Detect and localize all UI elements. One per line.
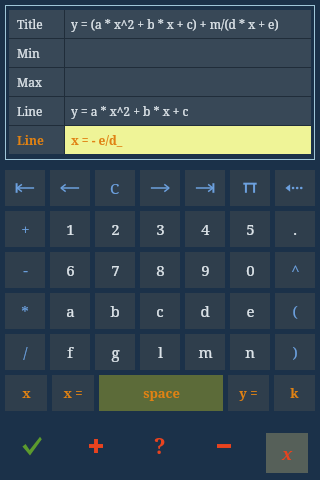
staticText: 7: [111, 260, 120, 280]
button[interactable]: Cancel: [266, 433, 308, 473]
staticText: +: [21, 219, 30, 239]
button[interactable]: 9: [185, 252, 225, 288]
button[interactable]: Add: [64, 412, 128, 480]
button[interactable]: 2: [95, 211, 135, 247]
button[interactable]: C: [95, 170, 135, 206]
staticText: 8: [156, 260, 165, 280]
button[interactable]: 4: [185, 211, 225, 247]
button[interactable]: e: [230, 293, 270, 329]
button[interactable]: Title: [9, 10, 311, 38]
button[interactable]: d: [185, 293, 225, 329]
button[interactable]: c: [140, 293, 180, 329]
staticText: x: [22, 384, 31, 402]
staticText: 4: [201, 219, 210, 239]
staticText: Line: [17, 103, 43, 119]
staticText: C: [110, 178, 120, 198]
staticText: ): [292, 342, 298, 362]
button[interactable]: 7: [95, 252, 135, 288]
button[interactable]: Accept: [0, 412, 64, 480]
staticText: 5: [246, 219, 255, 239]
staticText: b: [110, 301, 120, 321]
button[interactable]: g: [95, 334, 135, 370]
button[interactable]: 6: [50, 252, 90, 288]
button[interactable]: Remove: [192, 412, 256, 480]
staticText: y =: [239, 384, 258, 402]
staticText: y = a * x^2 + b * x + c: [71, 103, 189, 119]
staticText: g: [111, 342, 120, 362]
staticText: 3: [156, 219, 165, 239]
button[interactable]: +: [5, 211, 45, 247]
staticText: l: [158, 342, 163, 362]
staticText: d: [200, 301, 210, 321]
button[interactable]: a: [50, 293, 90, 329]
button[interactable]: x =: [52, 375, 94, 411]
button[interactable]: Min: [9, 39, 311, 67]
staticText: .: [293, 219, 297, 239]
staticText: y = (a * x^2 + b * x + c) + m/(d * x + e…: [71, 16, 279, 32]
staticText: 6: [66, 260, 75, 280]
button[interactable]: -: [5, 252, 45, 288]
button[interactable]: k: [274, 375, 315, 411]
button[interactable]: 3: [140, 211, 180, 247]
button[interactable]: Help: [128, 412, 192, 480]
staticText: 1: [66, 219, 75, 239]
staticText: a: [66, 301, 75, 321]
button[interactable]: 8: [140, 252, 180, 288]
button[interactable]: 1: [50, 211, 90, 247]
button[interactable]: b: [95, 293, 135, 329]
staticText: x =: [63, 384, 83, 402]
staticText: x: [282, 442, 293, 465]
staticText: /: [23, 342, 28, 362]
staticText: f: [67, 342, 73, 362]
button[interactable]: Pi: [230, 170, 270, 206]
button[interactable]: m: [185, 334, 225, 370]
staticText: Min: [17, 45, 40, 61]
staticText: *: [21, 301, 29, 321]
staticText: 9: [201, 260, 210, 280]
staticText: Title: [17, 16, 43, 32]
button[interactable]: More: [275, 170, 315, 206]
staticText: n: [245, 342, 255, 362]
button[interactable]: 5: [230, 211, 270, 247]
button[interactable]: Left: [50, 170, 90, 206]
button[interactable]: space: [99, 375, 223, 411]
button[interactable]: .: [275, 211, 315, 247]
staticText: e: [246, 301, 255, 321]
button[interactable]: *: [5, 293, 45, 329]
button[interactable]: ): [275, 334, 315, 370]
staticText: c: [156, 301, 164, 321]
staticText: (: [292, 301, 298, 321]
button[interactable]: f: [50, 334, 90, 370]
staticText: -: [23, 260, 28, 280]
button[interactable]: /: [5, 334, 45, 370]
button[interactable]: Line: [9, 97, 311, 125]
staticText: 2: [111, 219, 120, 239]
staticText: Line: [17, 132, 44, 148]
button[interactable]: y =: [228, 375, 269, 411]
staticText: k: [290, 384, 299, 402]
button[interactable]: (: [275, 293, 315, 329]
button[interactable]: n: [230, 334, 270, 370]
button[interactable]: Line: [9, 126, 311, 154]
staticText: Max: [17, 74, 42, 90]
button[interactable]: Home: [5, 170, 45, 206]
staticText: 0: [246, 260, 255, 280]
button[interactable]: x: [5, 375, 47, 411]
staticText: ?: [154, 432, 166, 461]
staticText: space: [143, 384, 180, 402]
button[interactable]: l: [140, 334, 180, 370]
staticText: ^: [291, 260, 300, 280]
staticText: x = - e/d_: [71, 132, 123, 148]
button[interactable]: End: [185, 170, 225, 206]
button[interactable]: Max: [9, 68, 311, 96]
button[interactable]: 0: [230, 252, 270, 288]
staticText: m: [198, 342, 213, 362]
button[interactable]: ^: [275, 252, 315, 288]
button[interactable]: Right: [140, 170, 180, 206]
